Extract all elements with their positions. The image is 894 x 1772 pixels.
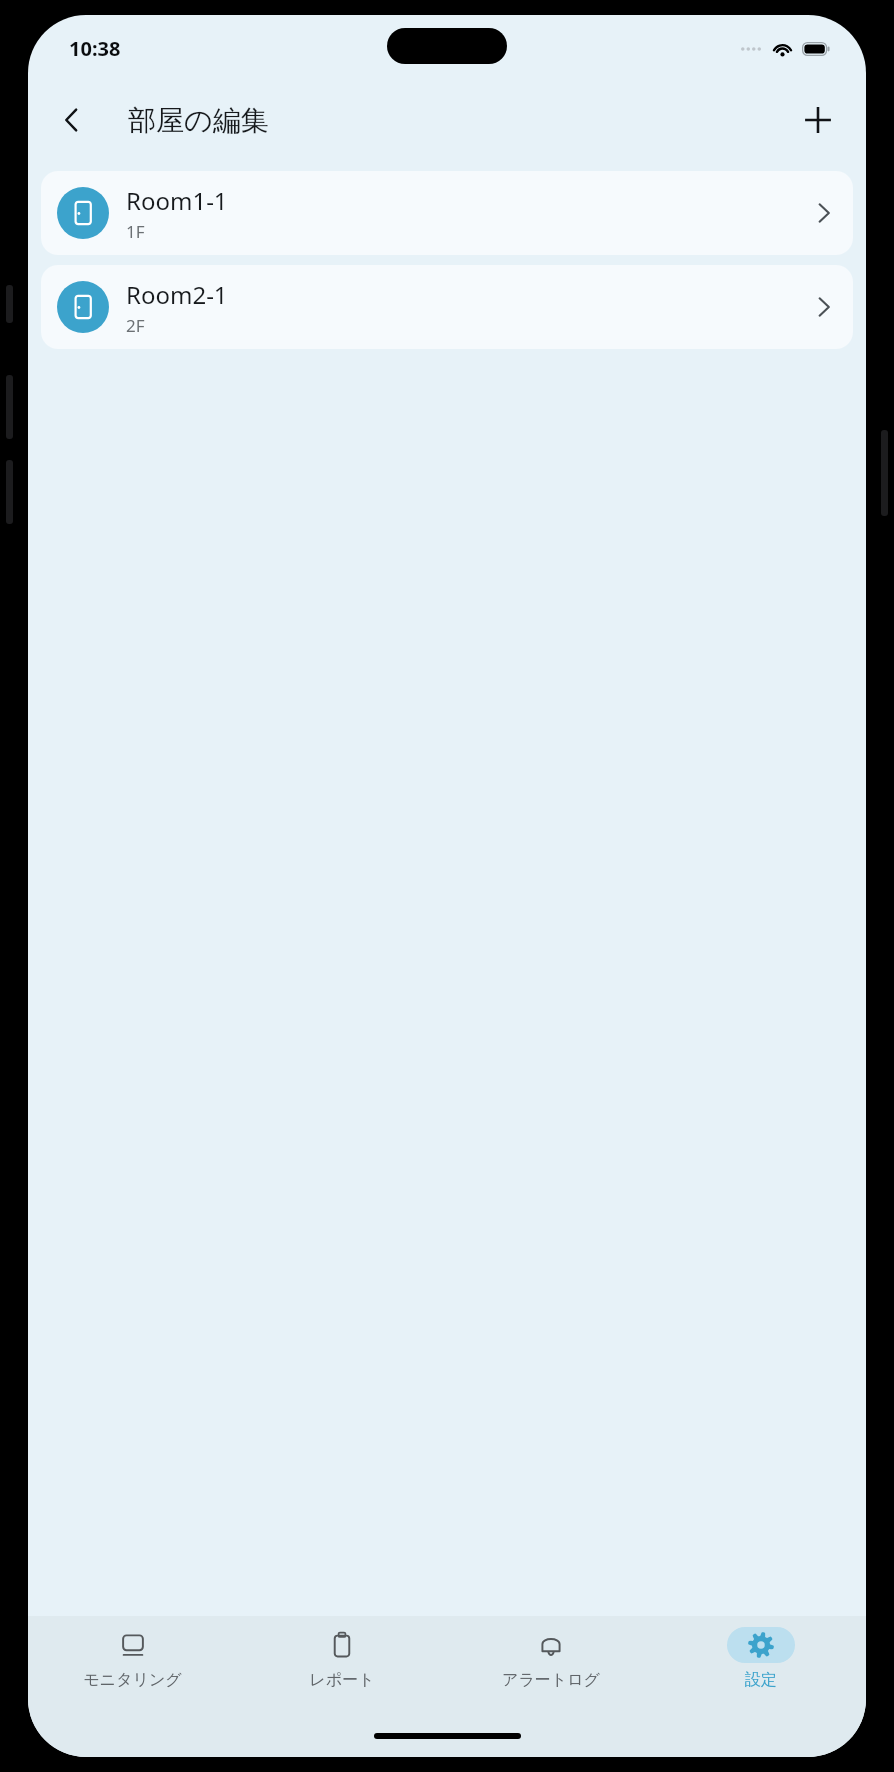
- staticText: アラートログ: [502, 1670, 600, 1690]
- staticText: Room2-1: [126, 278, 228, 311]
- button[interactable]: モニタリング: [28, 1616, 237, 1723]
- button[interactable]: Room2-1: [41, 265, 853, 349]
- staticText: レポート: [309, 1670, 375, 1690]
- button[interactable]: Back: [46, 94, 98, 146]
- staticText: モニタリング: [83, 1670, 182, 1690]
- button[interactable]: 設定: [656, 1616, 866, 1723]
- staticText: Room1-1: [126, 184, 228, 217]
- button[interactable]: レポート: [237, 1616, 446, 1723]
- staticText: 部屋の編集: [128, 103, 269, 138]
- button[interactable]: Room1-1: [41, 171, 853, 255]
- button[interactable]: Add room: [792, 94, 844, 146]
- staticText: 10:38: [69, 35, 121, 62]
- staticText: 2F: [126, 314, 145, 337]
- button[interactable]: アラートログ: [446, 1616, 656, 1723]
- staticText: 1F: [126, 220, 145, 243]
- staticText: 設定: [745, 1670, 777, 1690]
